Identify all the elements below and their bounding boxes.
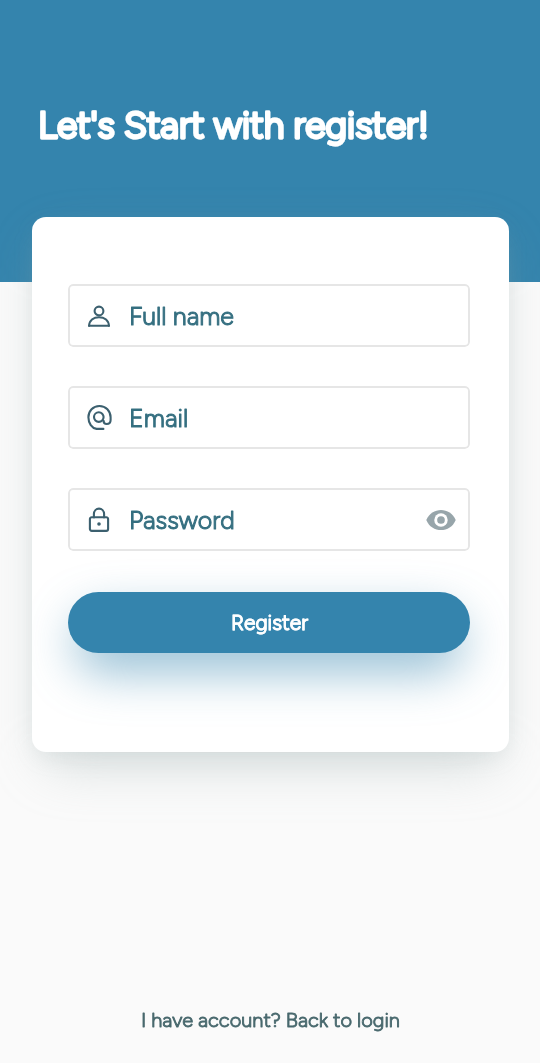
button[interactable]: Register — [68, 592, 470, 653]
button[interactable]: Full name — [68, 284, 470, 347]
staticText: Let's Start with register! — [38, 103, 429, 147]
staticText: Email — [129, 403, 189, 433]
staticText: Password — [129, 505, 235, 535]
staticText: Register — [231, 610, 308, 635]
button[interactable]: Email — [68, 386, 470, 449]
staticText: Password — [129, 505, 235, 535]
staticText: Full name — [129, 301, 234, 331]
staticText: Register — [231, 610, 308, 635]
button[interactable]: I have account? Back to login — [133, 1003, 408, 1037]
staticText: I have account? Back to login — [141, 1008, 400, 1032]
staticText: Full name — [129, 301, 234, 331]
staticText: Let's Start with register! — [38, 103, 429, 147]
staticText: I have account? Back to login — [141, 1008, 400, 1032]
button[interactable]: Password — [68, 488, 470, 551]
staticText: Email — [129, 403, 189, 433]
button[interactable]: Show password — [425, 504, 457, 536]
